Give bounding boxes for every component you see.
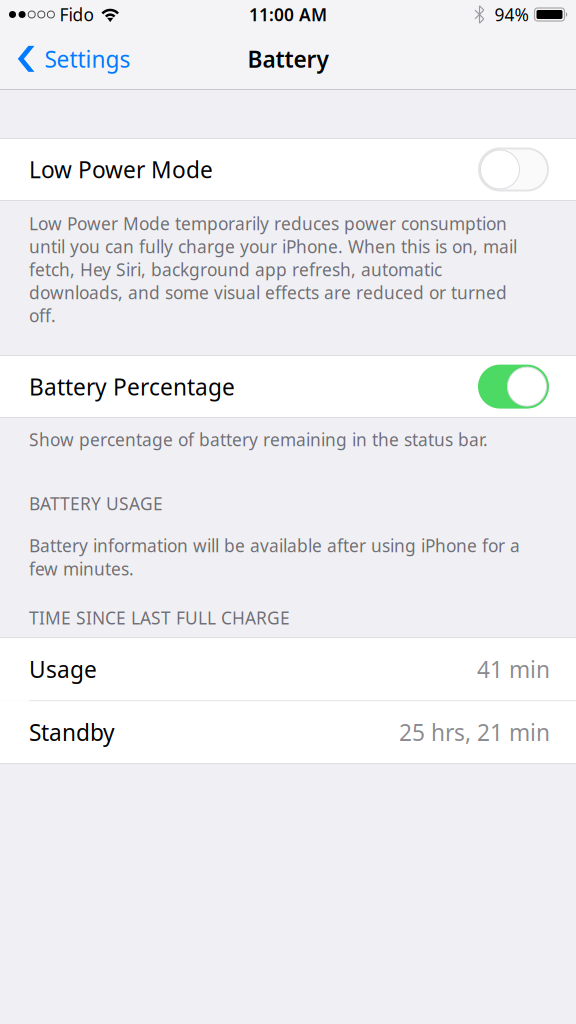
button[interactable]: Settings [0, 29, 142, 89]
staticText: Standby [29, 717, 115, 747]
staticText: Low Power Mode [29, 154, 213, 184]
staticText: TIME SINCE LAST FULL CHARGE [29, 606, 290, 629]
staticText: Battery [247, 44, 328, 74]
staticText: 11:00 AM [249, 3, 327, 26]
staticText: Battery information will be available af… [29, 534, 520, 580]
staticText: Battery Percentage [29, 371, 235, 402]
staticText: Low Power Mode temporarily reduces power… [29, 212, 517, 327]
staticText: Settings [44, 44, 130, 74]
button[interactable]: Low Power Mode [0, 139, 576, 200]
staticText: 41 min [477, 654, 550, 684]
staticText: 94% [494, 3, 528, 26]
staticText: Show percentage of battery remaining in … [29, 428, 488, 451]
staticText: Usage [29, 654, 97, 684]
staticText: BATTERY USAGE [29, 492, 163, 515]
staticText: Fido [59, 3, 93, 26]
staticText: 25 hrs, 21 min [399, 717, 550, 747]
button[interactable]: Standby [0, 701, 576, 763]
button[interactable]: Usage [0, 638, 576, 700]
button[interactable]: Battery Percentage [0, 356, 576, 417]
